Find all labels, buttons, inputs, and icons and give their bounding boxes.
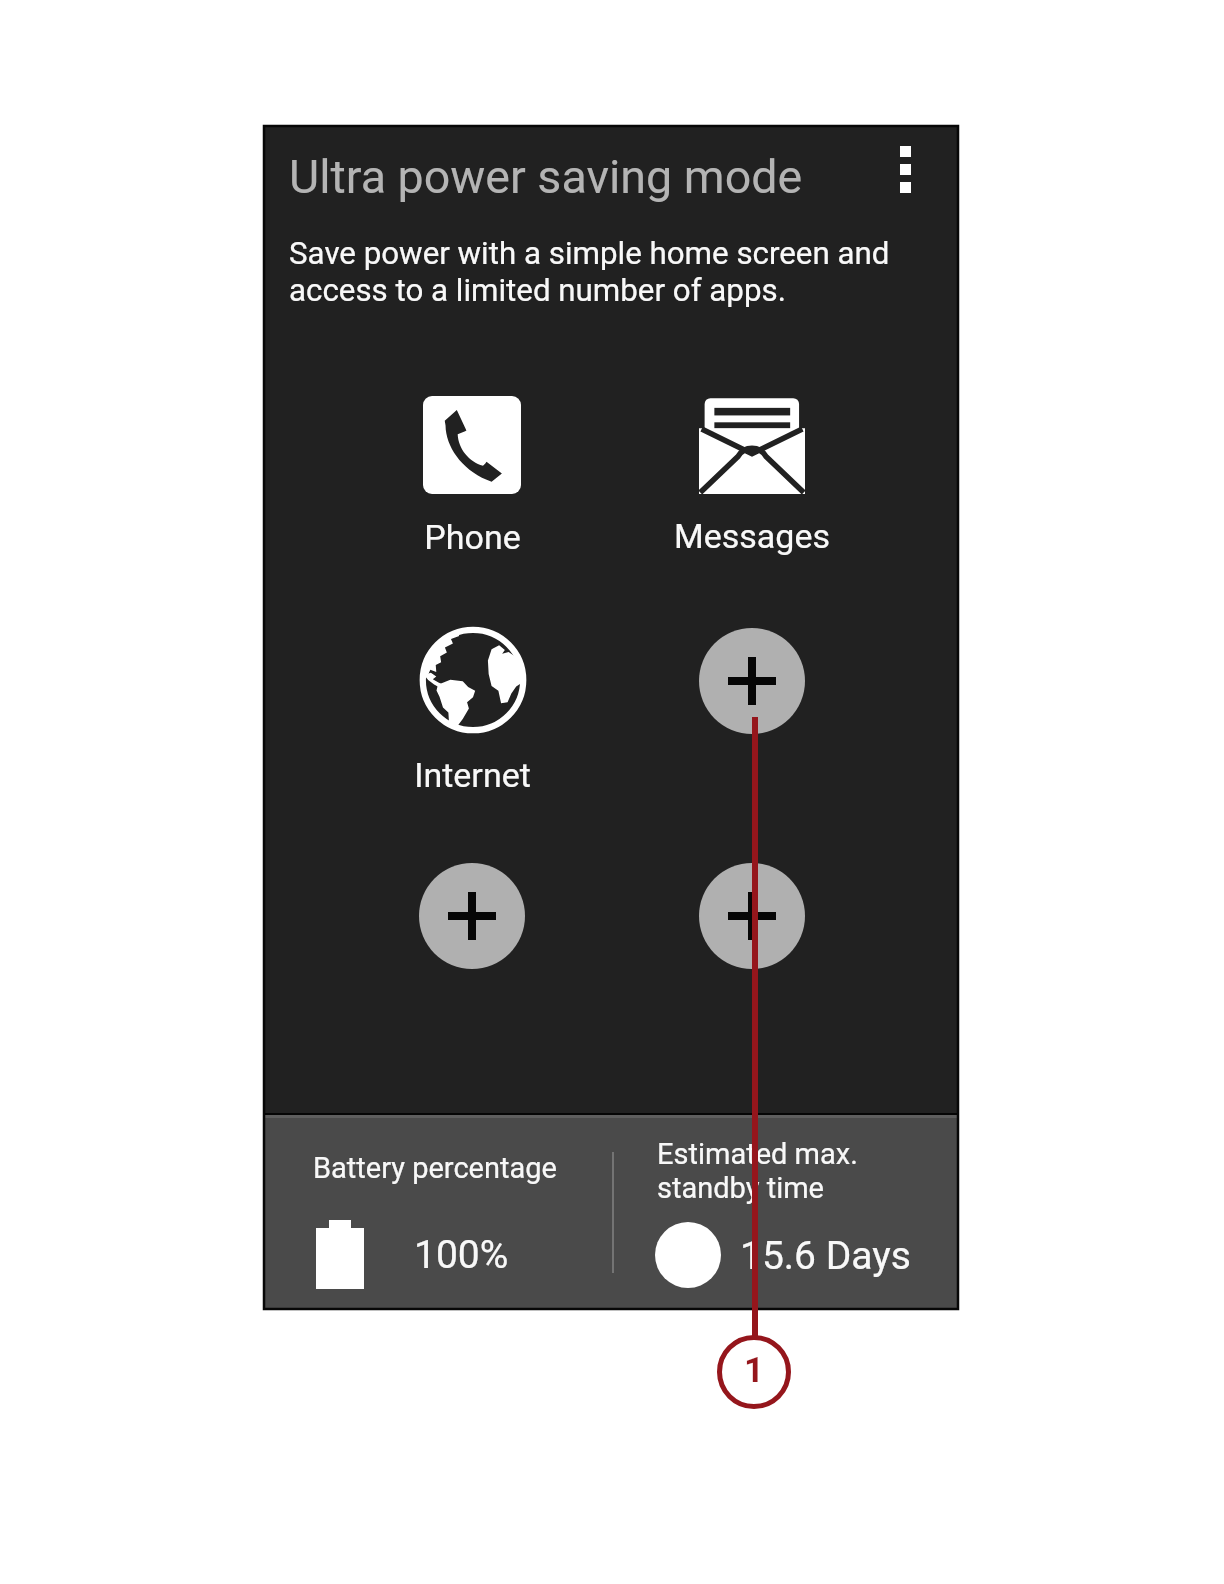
staticText: Phone <box>424 517 521 557</box>
staticText: Estimated max. standby time <box>657 1137 858 1205</box>
staticText: Ultra power saving mode <box>289 150 803 205</box>
button[interactable]: Messages <box>642 397 862 566</box>
staticText: Internet <box>414 755 531 795</box>
button[interactable]: Phone <box>362 396 582 567</box>
staticText: 100% <box>414 1232 509 1278</box>
staticText: Save power with a simple home screen and… <box>289 235 890 308</box>
staticText: 1 <box>744 1350 765 1391</box>
staticText: 15.6 Days <box>740 1233 911 1279</box>
button[interactable]: More options <box>863 125 947 213</box>
button[interactable]: Add app <box>699 863 805 969</box>
staticText: Messages <box>674 516 830 556</box>
button[interactable]: Add app <box>419 863 525 969</box>
button[interactable]: Internet <box>362 626 582 805</box>
staticText: Battery percentage <box>313 1151 557 1185</box>
button[interactable]: Add app <box>699 628 805 734</box>
